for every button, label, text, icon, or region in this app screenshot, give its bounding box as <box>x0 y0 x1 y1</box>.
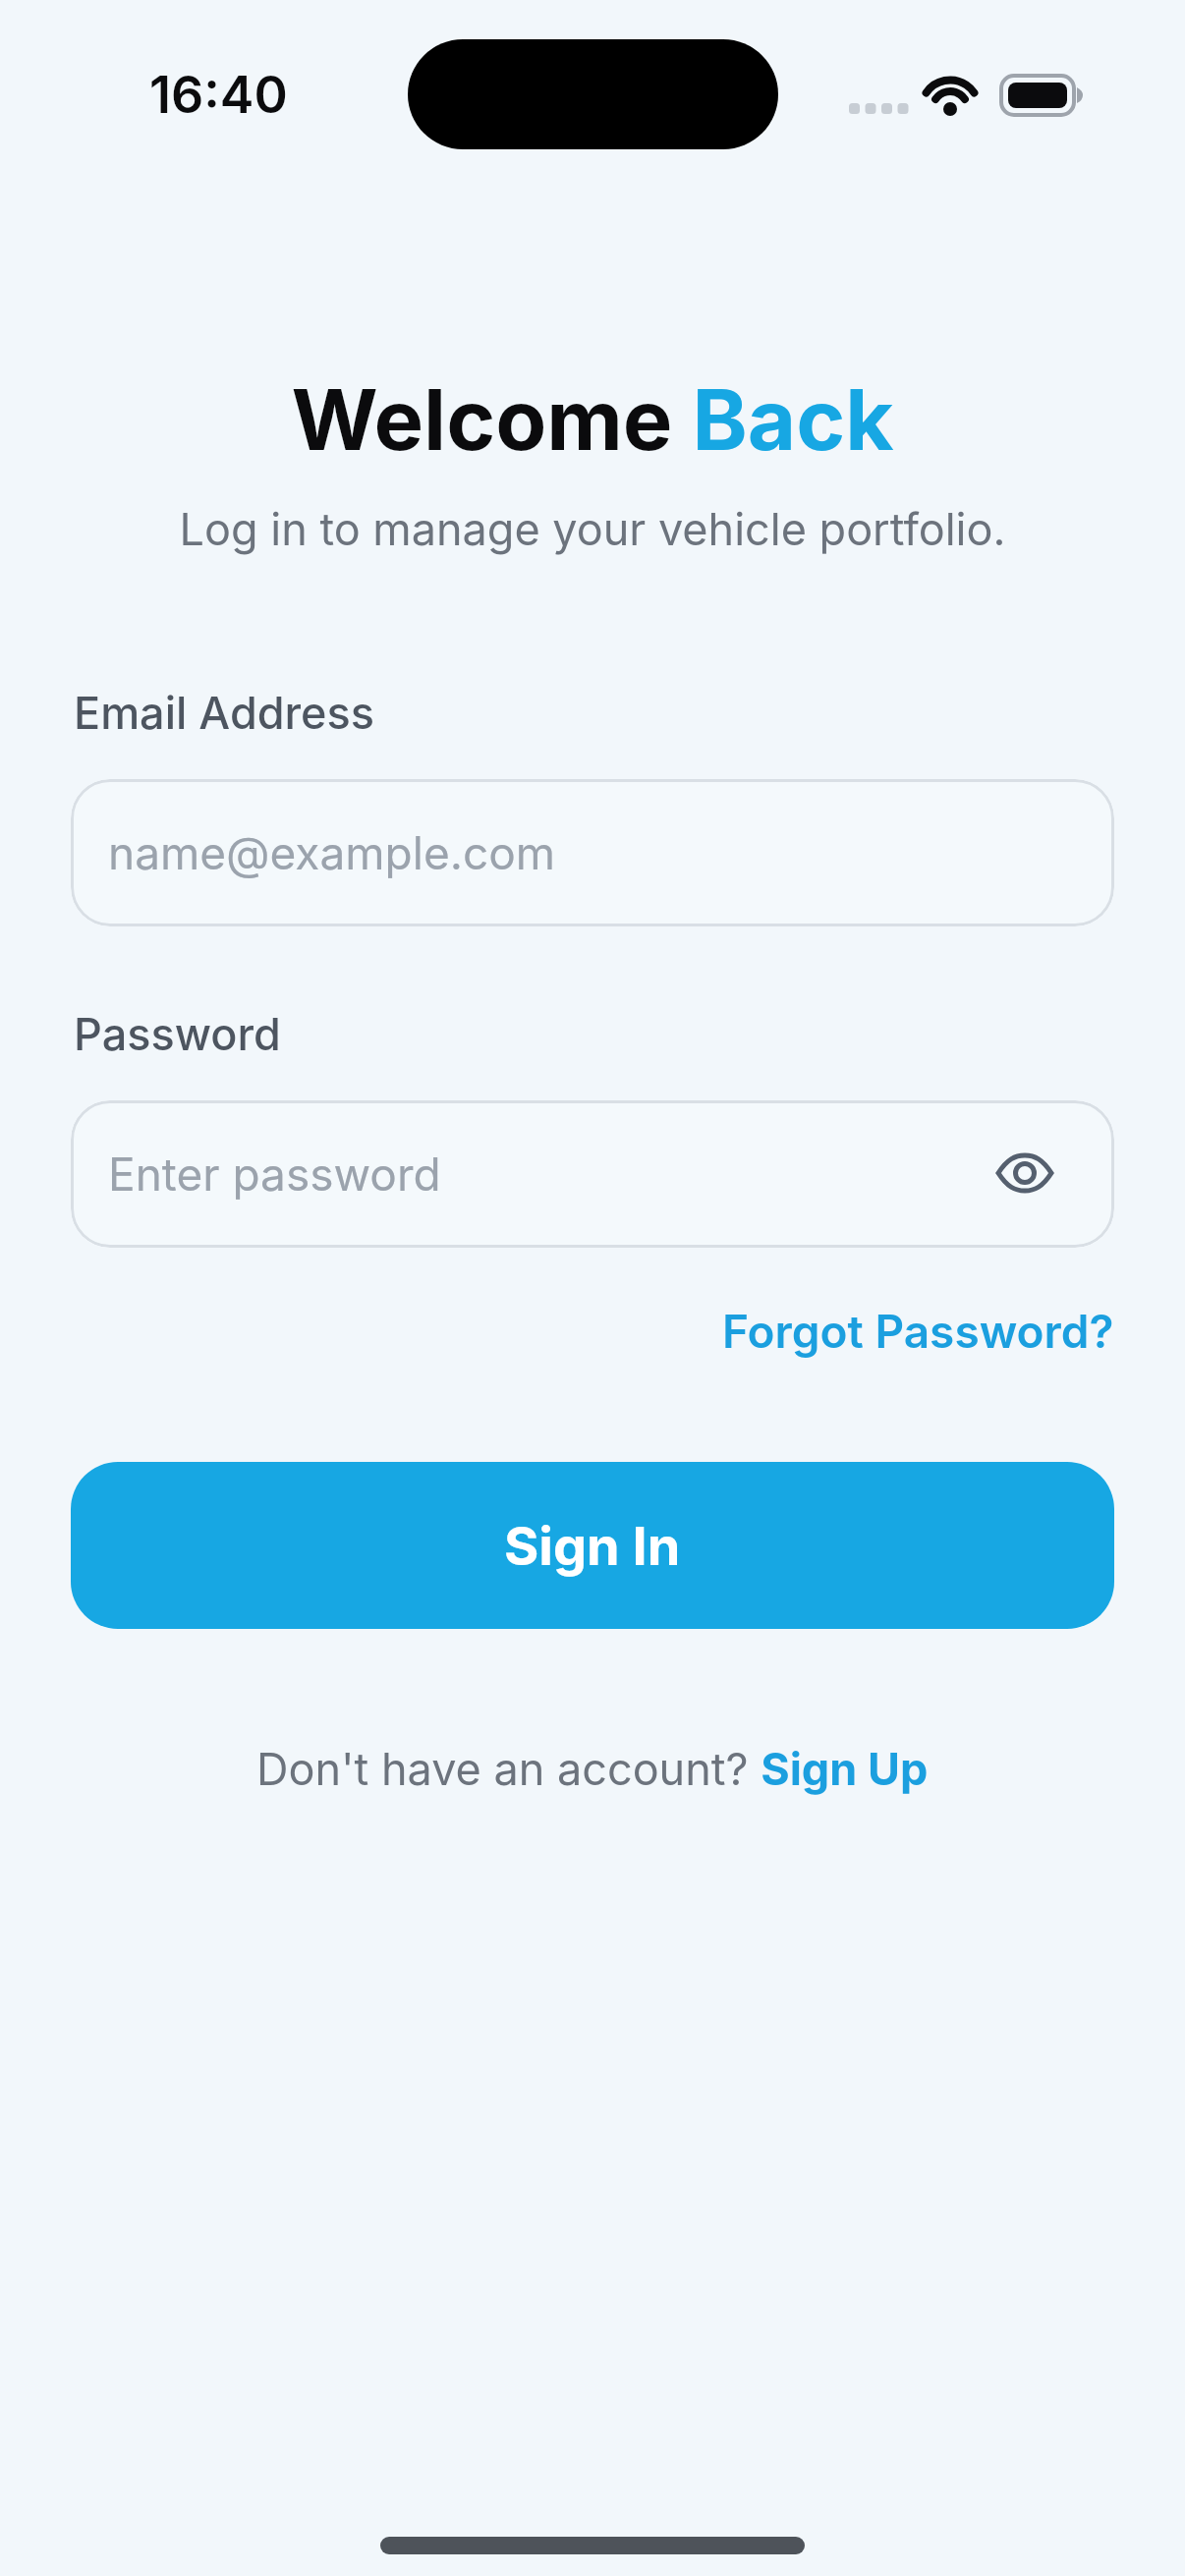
staticText: Don't have an account? Sign Up <box>256 1742 929 1795</box>
staticText: Email Address <box>74 686 374 739</box>
staticText: Enter password <box>108 1147 441 1202</box>
button[interactable]: name@example.com <box>71 779 1114 926</box>
staticText: Password <box>74 1007 281 1060</box>
button[interactable]: Sign In <box>71 1462 1114 1629</box>
staticText: 16:40 <box>149 64 288 126</box>
staticText: Sign In <box>504 1514 681 1578</box>
button[interactable] <box>996 1152 1053 1194</box>
button[interactable]: Don't have an account? Sign Up <box>0 1742 1185 1795</box>
button[interactable]: Enter password <box>71 1100 1114 1248</box>
staticText: Log in to manage your vehicle portfolio. <box>0 502 1185 555</box>
staticText: Forgot Password? <box>722 1304 1114 1359</box>
staticText: name@example.com <box>108 825 556 880</box>
staticText: Welcome Back <box>0 369 1185 471</box>
button[interactable]: Forgot Password? <box>688 1297 1114 1366</box>
